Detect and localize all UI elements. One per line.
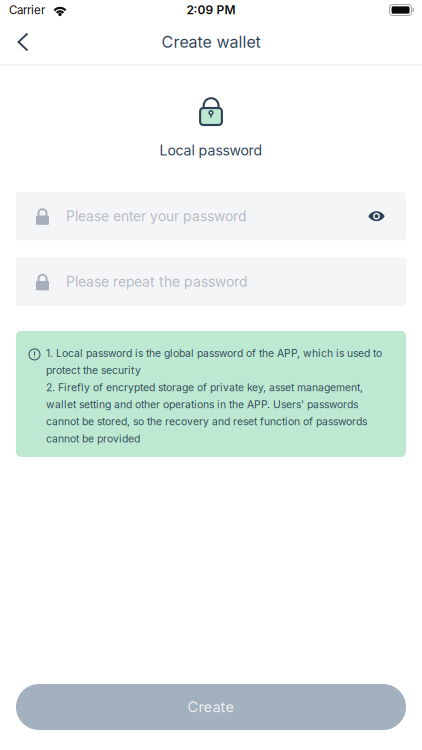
button[interactable]: Show password: [355, 192, 398, 240]
staticText: Please repeat the password: [66, 273, 247, 290]
staticText: 1. Local password is the global password…: [46, 347, 382, 445]
staticText: Please enter your password: [66, 208, 246, 225]
staticText: Create: [187, 698, 234, 716]
button[interactable]: Create: [16, 684, 406, 730]
staticText: Carrier: [9, 3, 45, 17]
button[interactable]: Back: [6, 20, 40, 64]
staticText: 2:09 PM: [186, 3, 235, 17]
staticText: Local password: [159, 142, 262, 159]
staticText: Create wallet: [161, 32, 260, 52]
